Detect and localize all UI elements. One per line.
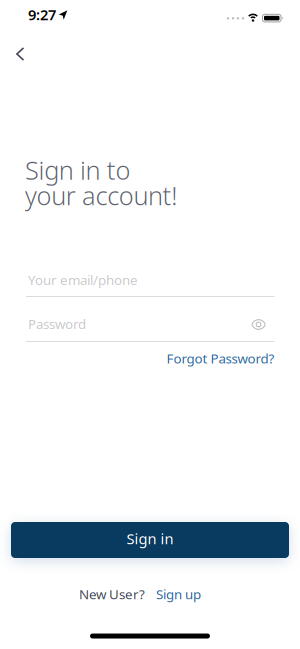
staticText: Forgot Password? xyxy=(166,349,274,367)
staticText: your account! xyxy=(25,179,177,212)
button[interactable]: Sign in xyxy=(11,522,289,558)
staticText: Sign in xyxy=(126,529,173,548)
button[interactable]: Forgot Password? xyxy=(166,349,274,367)
staticText: Your email/phone xyxy=(28,271,138,289)
staticText: New User? xyxy=(79,585,145,603)
staticText: Sign in to xyxy=(25,153,130,187)
staticText: Sign up xyxy=(156,585,201,603)
staticText: Password xyxy=(28,315,86,333)
button[interactable]: Show password xyxy=(247,314,271,334)
button[interactable]: Sign up xyxy=(156,585,201,603)
staticText: 9:27 xyxy=(28,5,56,24)
button[interactable]: Back xyxy=(8,42,32,66)
